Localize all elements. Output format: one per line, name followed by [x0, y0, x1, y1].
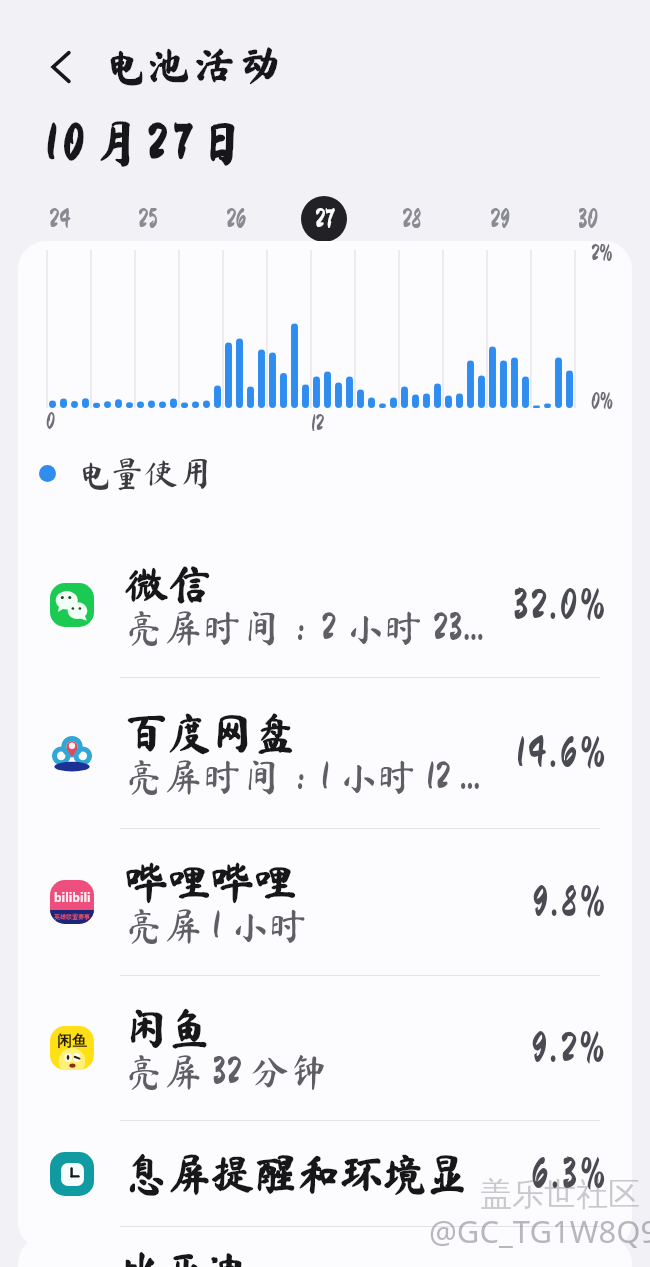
staticText: 亮屏 32 分钟	[125, 1053, 330, 1091]
staticText: 电池活动	[103, 44, 285, 85]
staticText: 闲鱼	[57, 1032, 87, 1051]
staticText: 28	[402, 206, 422, 232]
staticText: 26	[226, 206, 247, 232]
staticText: 10月27日	[46, 118, 255, 168]
staticText: 25	[138, 206, 158, 232]
staticText: 息屏提醒和环境显	[125, 1152, 469, 1195]
staticText: 闲鱼	[125, 1006, 211, 1049]
staticText: 9.2%	[531, 1027, 608, 1069]
button[interactable]: 百度网盘	[18, 678, 632, 828]
button[interactable]: 微信	[18, 532, 632, 677]
staticText: 30	[578, 206, 598, 232]
button[interactable]: 26	[213, 196, 259, 242]
staticText: 0	[46, 411, 55, 433]
button[interactable]: 闲鱼	[18, 976, 632, 1120]
staticText: 百度网盘	[125, 711, 297, 754]
button[interactable]: 28	[389, 196, 435, 242]
button[interactable]: 29	[477, 196, 523, 242]
staticText: 哔哩哔哩	[125, 860, 297, 903]
button[interactable]: 27	[301, 196, 347, 242]
staticText: 盖乐世社区	[480, 1174, 640, 1214]
staticText: 14.6%	[516, 732, 608, 774]
staticText: 2%	[591, 243, 613, 265]
staticText: 亮屏时间：1 小时 12 …	[125, 758, 482, 796]
button[interactable]: 30	[565, 196, 611, 242]
button[interactable]: 25	[125, 196, 171, 242]
staticText: 24	[49, 206, 71, 232]
button[interactable]: bilibili	[18, 829, 632, 975]
staticText: 9.8%	[532, 881, 608, 923]
staticText: 29	[490, 206, 510, 232]
staticText: 0%	[591, 391, 613, 413]
staticText: 亮屏 1 小时	[125, 907, 309, 945]
staticText: 27	[315, 206, 334, 232]
staticText: 微信	[125, 562, 211, 605]
staticText: 英雄联盟赛事	[54, 913, 90, 921]
staticText: 32.0%	[513, 584, 608, 626]
staticText: 电量使用	[76, 456, 212, 490]
staticText: @GC_TG1W8Q9	[429, 1210, 650, 1252]
staticText: bilibili	[54, 889, 91, 905]
button[interactable]: 息屏提醒和环境显	[18, 1121, 632, 1226]
staticText: 12	[311, 413, 324, 435]
button[interactable]: 24	[37, 196, 83, 242]
staticText: 比亚迪	[120, 1248, 249, 1267]
button[interactable]: Back	[30, 36, 92, 98]
staticText: 亮屏时间：2 小时 23…	[125, 609, 486, 647]
staticText: 6.3%	[531, 1153, 608, 1195]
